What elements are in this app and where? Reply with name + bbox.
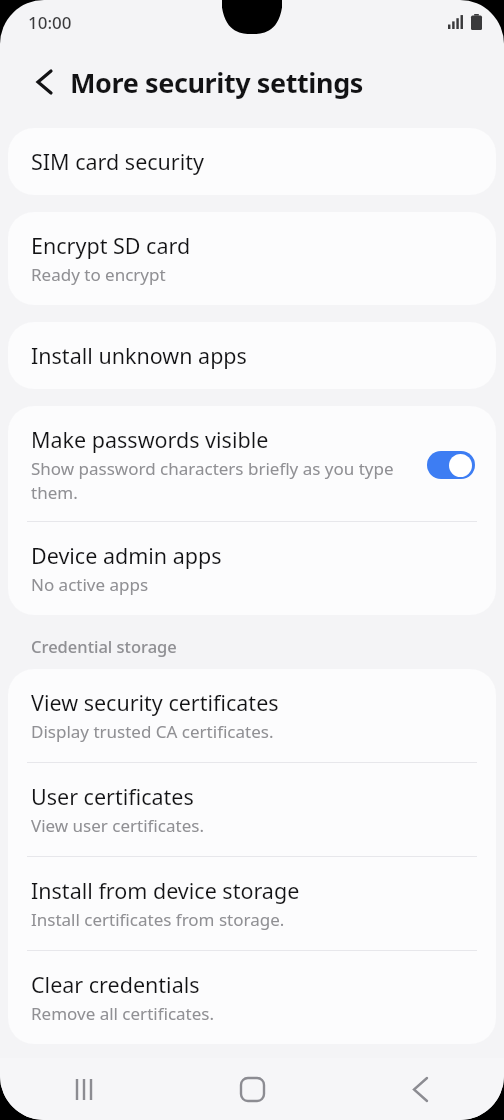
button[interactable]: Back	[22, 60, 66, 104]
button[interactable]: View security certificates	[8, 669, 496, 762]
button[interactable]: Back	[336, 1058, 504, 1120]
button[interactable]: Device admin apps	[8, 522, 496, 615]
staticText: More security settings	[70, 64, 364, 101]
staticText: SIM card security	[31, 147, 205, 176]
staticText: Install unknown apps	[31, 341, 247, 370]
staticText: No active apps	[31, 573, 149, 596]
button[interactable]: Clear credentials	[8, 951, 496, 1044]
staticText: 10:00	[28, 11, 72, 34]
button[interactable]: Install unknown apps	[8, 322, 496, 389]
staticText: Credential storage	[31, 635, 177, 657]
staticText: Encrypt SD card	[31, 231, 191, 260]
button[interactable]: SIM card security	[8, 128, 496, 195]
button[interactable]: Encrypt SD card	[8, 212, 496, 305]
button[interactable]: Install from device storage	[8, 857, 496, 950]
staticText: Device admin apps	[31, 541, 222, 570]
button[interactable]: Make passwords visible toggle	[427, 451, 475, 479]
button[interactable]: Recent apps	[0, 1058, 168, 1120]
button[interactable]: Home	[168, 1058, 336, 1120]
staticText: View user certificates.	[31, 814, 204, 837]
staticText: Ready to encrypt	[31, 263, 166, 286]
button[interactable]: Make passwords visible	[8, 406, 496, 521]
staticText: Install certificates from storage.	[31, 908, 285, 931]
staticText: View security certificates	[31, 688, 279, 717]
staticText: User certificates	[31, 782, 194, 811]
staticText: Clear credentials	[31, 970, 200, 999]
staticText: Make passwords visible	[31, 425, 269, 454]
staticText: Install from device storage	[31, 876, 300, 905]
staticText: Display trusted CA certificates.	[31, 720, 274, 743]
staticText: Show password characters briefly as you …	[31, 457, 417, 504]
button[interactable]: User certificates	[8, 763, 496, 856]
staticText: Remove all certificates.	[31, 1002, 215, 1025]
